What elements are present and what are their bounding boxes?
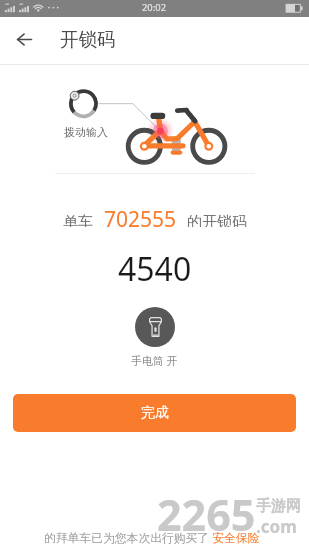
button[interactable]: Flashlight toggle [131,307,178,368]
staticText: 完成 [141,404,169,422]
staticText: 手电筒 开 [131,353,178,368]
staticText: 拨动输入 [64,125,108,139]
staticText: 手游网 [256,497,301,516]
staticText: 20:02 [142,1,167,14]
staticText: 2265 [157,485,256,544]
button[interactable]: Back [10,25,38,53]
staticText: .com [256,515,297,538]
staticText: 4540 [118,247,192,287]
staticText: 的拜单车已为您本次出行购买了 安全保险 [44,529,260,545]
staticText: 单车 702555 的开锁码 [63,205,247,227]
button[interactable]: 完成 [13,394,296,432]
staticText: 开锁码 [60,28,116,51]
